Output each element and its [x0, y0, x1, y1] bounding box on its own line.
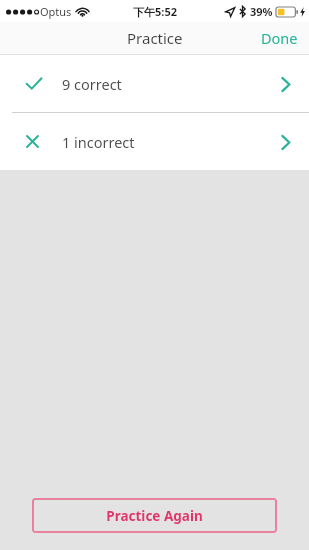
staticText: Practice Again: [106, 507, 203, 525]
staticText: 下午5:52: [133, 4, 177, 19]
button[interactable]: Done: [250, 22, 309, 54]
button[interactable]: 9 correct: [0, 55, 309, 112]
button[interactable]: Practice Again: [32, 498, 277, 533]
staticText: 39%: [250, 4, 273, 19]
staticText: Optus: [40, 4, 72, 19]
other: Open details: [273, 72, 297, 96]
button[interactable]: 1 incorrect: [0, 113, 309, 170]
staticText: Practice: [127, 28, 183, 48]
staticText: 1 incorrect: [62, 132, 135, 152]
staticText: 9 correct: [62, 74, 122, 94]
staticText: Done: [261, 28, 298, 48]
other: Open details: [273, 130, 297, 154]
